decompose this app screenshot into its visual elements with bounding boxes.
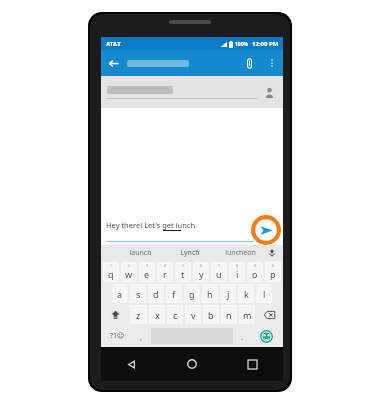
button[interactable]: Home: [161, 347, 222, 381]
button[interactable]: More options: [261, 52, 283, 74]
staticText: j: [227, 288, 230, 300]
staticText: launch: [129, 248, 152, 258]
button[interactable]: 3: [139, 262, 155, 282]
staticText: s: [136, 288, 141, 300]
staticText: e: [144, 268, 150, 280]
staticText: y: [199, 268, 204, 280]
button[interactable]: Add contact: [101, 76, 283, 108]
button[interactable]: 7: [211, 262, 227, 282]
button[interactable]: launch: [115, 245, 165, 261]
staticText: 3: [146, 263, 149, 268]
staticText: AT&T: [106, 40, 121, 48]
button[interactable]: s: [130, 284, 146, 303]
staticText: u: [216, 268, 222, 280]
staticText: r: [163, 268, 167, 280]
button[interactable]: 0: [265, 262, 281, 282]
staticText: k: [244, 288, 249, 300]
button[interactable]: l: [256, 284, 272, 303]
staticText: 100%: [235, 41, 249, 48]
staticText: luncheon: [225, 248, 256, 258]
button[interactable]: Shift: [103, 305, 128, 324]
button[interactable]: 8: [229, 262, 245, 282]
button[interactable]: k: [238, 284, 254, 303]
button[interactable]: Attach: [237, 51, 261, 75]
button[interactable]: d: [148, 284, 164, 303]
button[interactable]: Lynch: [165, 245, 215, 261]
staticText: 5: [182, 263, 185, 268]
staticText: p: [270, 268, 276, 280]
staticText: m: [243, 309, 252, 321]
button[interactable]: h: [202, 284, 218, 303]
staticText: i: [236, 268, 239, 280]
staticText: a: [117, 288, 123, 300]
staticText: 0: [272, 263, 275, 268]
other: Add contact: [262, 85, 276, 99]
button[interactable]: Send: [251, 215, 281, 245]
button[interactable]: 9: [247, 262, 263, 282]
staticText: z: [136, 309, 141, 321]
staticText: 2: [128, 263, 131, 268]
button[interactable]: v: [185, 305, 201, 324]
staticText: ,: [140, 331, 143, 342]
button[interactable]: b: [203, 305, 219, 324]
button[interactable]: ,: [134, 326, 149, 346]
button[interactable]: Recent apps: [222, 347, 283, 381]
button[interactable]: .: [235, 326, 250, 346]
button[interactable]: m: [239, 305, 255, 324]
staticText: b: [208, 309, 214, 321]
button[interactable]: 5: [175, 262, 191, 282]
staticText: .: [241, 331, 244, 342]
staticText: 12:00 PM: [252, 40, 279, 48]
staticText: g: [189, 288, 195, 300]
staticText: n: [226, 309, 232, 321]
staticText: x: [155, 309, 160, 321]
staticText: 8: [236, 263, 239, 268]
button[interactable]: 2: [121, 262, 137, 282]
staticText: q: [108, 268, 114, 280]
staticText: ?1☺: [110, 331, 125, 341]
button[interactable]: luncheon: [215, 245, 265, 261]
button[interactable]: Back: [101, 347, 161, 381]
staticText: t: [181, 268, 185, 280]
button[interactable]: ?1☺: [103, 326, 132, 346]
staticText: l: [263, 288, 266, 300]
staticText: 6: [200, 263, 203, 268]
staticText: o: [252, 268, 258, 280]
button[interactable]: 4: [157, 262, 173, 282]
staticText: v: [191, 309, 196, 321]
button[interactable]: z: [130, 305, 147, 324]
button[interactable]: g: [184, 284, 200, 303]
staticText: d: [153, 288, 159, 300]
staticText: c: [173, 309, 178, 321]
button[interactable]: j: [220, 284, 236, 303]
button[interactable]: 6: [193, 262, 209, 282]
staticText: w: [125, 268, 133, 280]
staticText: 9: [254, 263, 257, 268]
button[interactable]: f: [166, 284, 182, 303]
button[interactable]: Backspace: [257, 305, 281, 324]
button[interactable]: Emoji: [252, 326, 281, 346]
button[interactable]: Voice input: [265, 245, 279, 261]
button[interactable]: a: [112, 284, 128, 303]
staticText: 4: [164, 263, 167, 268]
button[interactable]: x: [149, 305, 165, 324]
button[interactable]: Back: [101, 51, 125, 75]
staticText: Hey there! Let's get lunch: [106, 220, 196, 230]
staticText: f: [172, 288, 176, 300]
staticText: Lynch: [180, 248, 200, 258]
staticText: h: [207, 288, 213, 300]
staticText: 7: [218, 263, 221, 268]
staticText: 1: [110, 263, 113, 268]
button[interactable]: 1: [103, 262, 119, 282]
button[interactable]: c: [167, 305, 183, 324]
button[interactable]: n: [221, 305, 237, 324]
